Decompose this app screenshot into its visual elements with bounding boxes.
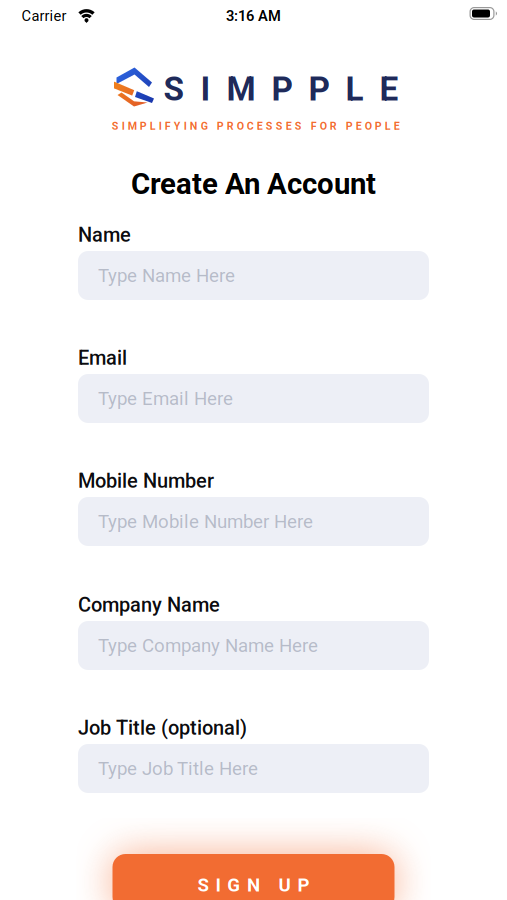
button[interactable]: Type Mobile Number Here [78,497,429,546]
staticText: Carrier [21,8,66,24]
staticText: Create An Account [131,167,376,201]
staticText: Job Title (optional) [78,717,247,739]
staticText: SIMPPLE [163,70,398,108]
staticText: Type Mobile Number Here [98,511,313,532]
staticText: Name [78,224,131,246]
button[interactable]: SIGN UP [112,854,394,900]
staticText: SIGN UP [198,874,309,896]
staticText: Type Name Here [98,265,235,286]
staticText: 3:16 AM [226,8,281,24]
staticText: Company Name [78,594,220,616]
staticText: Email [78,347,127,369]
staticText: Type Job Title Here [98,758,258,779]
staticText: Type Email Here [98,388,233,409]
staticText: SIMPLIFYING PROCESSES FOR PEOPLE [112,120,400,132]
staticText: Mobile Number [78,470,214,492]
button[interactable]: Type Email Here [78,374,429,423]
button[interactable]: Type Name Here [78,251,429,300]
staticText: Type Company Name Here [98,635,318,656]
button[interactable]: Type Company Name Here [78,621,429,670]
button[interactable]: Type Job Title Here [78,744,429,793]
